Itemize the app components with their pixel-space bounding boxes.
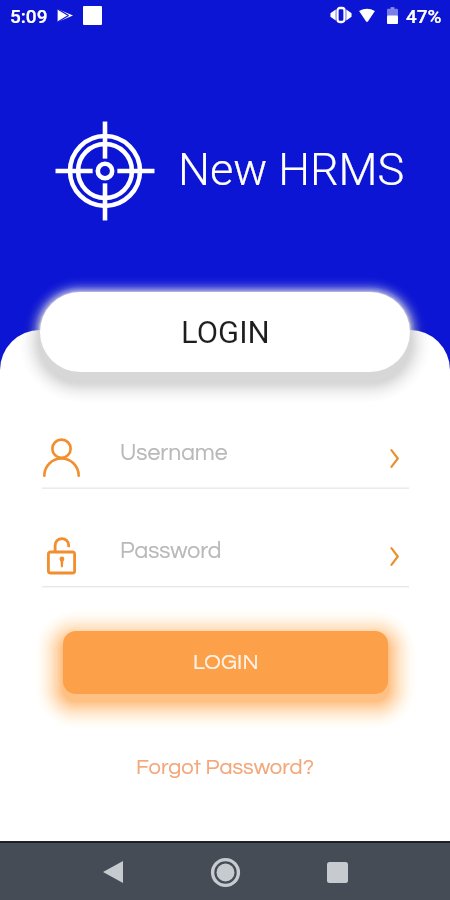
button[interactable]: Forgot Password? [128, 752, 322, 783]
button[interactable]: LOGIN [63, 631, 388, 694]
staticText: LOGIN [181, 314, 270, 350]
staticText: 47% [406, 5, 442, 27]
staticText: Username [120, 441, 228, 465]
staticText: Forgot Password? [136, 756, 314, 779]
staticText: 5:09 [10, 5, 48, 27]
staticText: Password [120, 539, 222, 563]
other: New HRMS logo [54, 120, 156, 222]
staticText: LOGIN [193, 651, 259, 674]
button[interactable]: Home [200, 847, 250, 897]
staticText: New HRMS [178, 143, 405, 196]
button[interactable]: LOGIN [40, 292, 410, 372]
button[interactable]: Password [0, 527, 450, 585]
button[interactable]: Recents [312, 847, 362, 897]
button[interactable]: Back [88, 847, 138, 897]
button[interactable]: Username [0, 429, 450, 487]
